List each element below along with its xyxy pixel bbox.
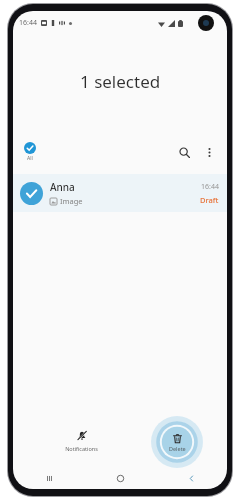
button[interactable]: Notifications xyxy=(61,426,102,456)
staticText: All xyxy=(27,155,33,162)
staticText: Draft xyxy=(200,195,219,205)
button[interactable]: Back xyxy=(156,467,227,489)
button[interactable]: More options xyxy=(197,140,221,164)
button[interactable]: Delete xyxy=(151,416,203,468)
button[interactable]: Recents xyxy=(13,467,85,489)
staticText: Anna xyxy=(50,180,75,194)
staticText: 16:44 xyxy=(19,18,37,28)
staticText: 16:44 xyxy=(201,182,219,192)
button[interactable]: Search xyxy=(171,139,197,165)
staticText: Delete xyxy=(169,445,186,452)
staticText: 1 selected xyxy=(80,70,161,93)
staticText: Image xyxy=(60,196,83,206)
staticText: Notifications xyxy=(65,445,98,452)
button[interactable]: Home xyxy=(85,467,156,489)
button[interactable]: Anna xyxy=(13,174,227,212)
button[interactable]: All xyxy=(22,141,38,163)
